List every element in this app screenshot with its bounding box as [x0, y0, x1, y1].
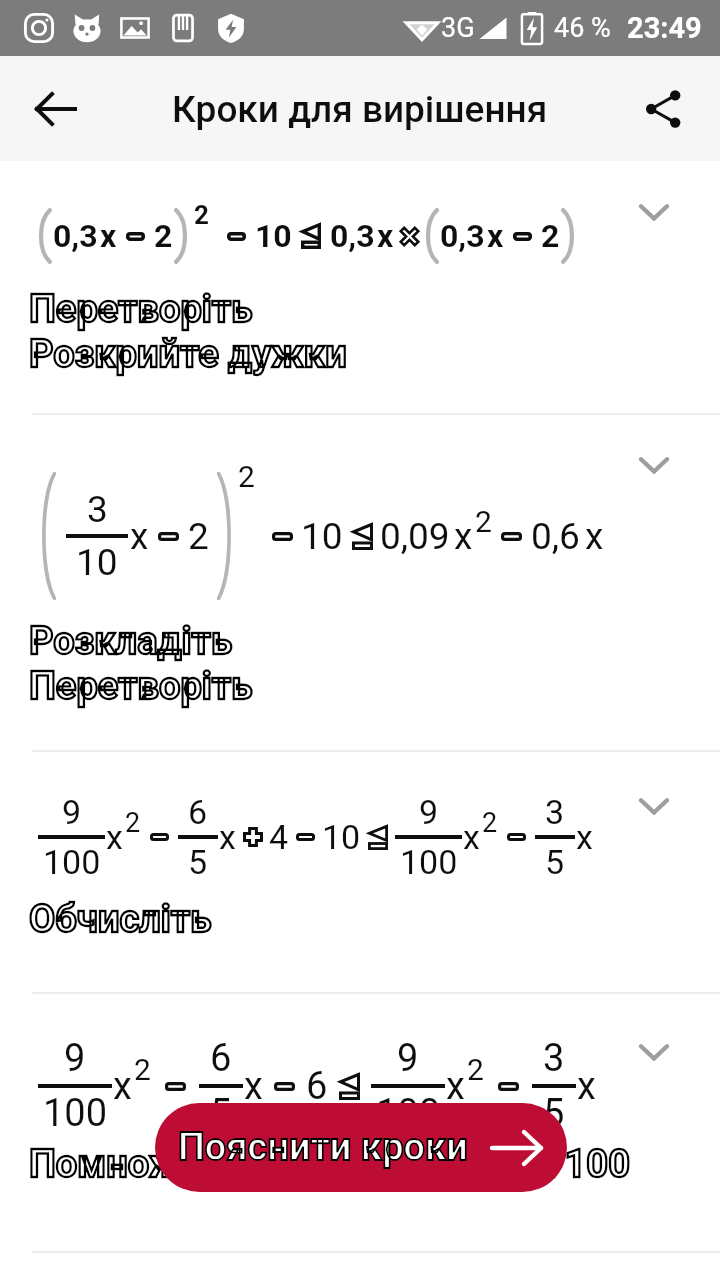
staticText: 2 — [482, 807, 498, 839]
staticText: Перетворіть — [29, 287, 253, 332]
staticText: 9 — [397, 1036, 419, 1081]
staticText: Розкладіть — [29, 619, 233, 664]
staticText: 100 — [43, 842, 101, 882]
staticText: 100 — [43, 1091, 108, 1136]
staticText: 2 — [134, 1052, 151, 1087]
staticText: x — [377, 217, 394, 255]
staticText: 10 — [301, 515, 343, 558]
staticText: 6 — [210, 1036, 232, 1081]
staticText: 4 — [269, 817, 289, 857]
staticText: 2 — [154, 217, 173, 255]
staticText: x — [576, 817, 593, 857]
staticText: Перетворіть — [29, 287, 253, 332]
button[interactable]: Back — [20, 73, 92, 145]
staticText: x — [106, 817, 123, 857]
staticText: 100 — [400, 842, 458, 882]
staticText: Перетворіть — [29, 664, 253, 709]
staticText: Розкрийте дужки — [29, 332, 347, 377]
button[interactable]: Expand step — [636, 447, 672, 483]
staticText: 3 — [87, 488, 108, 531]
button[interactable]: Пояснити кроки — [155, 1103, 567, 1192]
staticText: 2 — [188, 515, 209, 558]
staticText: x — [487, 217, 504, 255]
staticText: 0,3 — [440, 217, 485, 255]
staticText: Розкладіть — [29, 619, 233, 664]
staticText: 3G — [441, 12, 475, 44]
staticText: x — [219, 817, 236, 857]
staticText: 3 — [543, 1036, 565, 1081]
staticText: 6 — [306, 1064, 328, 1109]
button[interactable]: Expand step — [636, 194, 672, 230]
staticText: 5 — [188, 842, 208, 882]
staticText: 0,3 — [330, 217, 375, 255]
staticText: Помножте обидві частини на 100 — [29, 1142, 630, 1187]
button[interactable]: Expand step — [636, 788, 672, 824]
staticText: 5 — [210, 1091, 232, 1136]
staticText: Пояснити кроки — [178, 1125, 468, 1170]
staticText: Розкрийте дужки — [29, 332, 347, 377]
staticText: x — [577, 1064, 596, 1109]
staticText: x — [244, 1064, 263, 1109]
staticText: x — [585, 515, 604, 558]
staticText: 3 — [545, 792, 565, 832]
staticText: 2 — [238, 459, 255, 494]
staticText: 0,09 — [380, 515, 450, 558]
staticText: 2 — [475, 504, 492, 539]
button[interactable]: Expand step — [636, 1034, 672, 1070]
staticText: 23:49 — [627, 11, 702, 45]
staticText: Пояснити кроки — [178, 1125, 468, 1170]
staticText: 2 — [467, 1052, 484, 1087]
staticText: x — [463, 817, 480, 857]
staticText: 2 — [125, 807, 141, 839]
staticText: 9 — [64, 1036, 86, 1081]
staticText: 5 — [543, 1091, 565, 1136]
staticText: 100 — [376, 1091, 441, 1136]
staticText: x — [454, 515, 473, 558]
staticText: 46 % — [554, 12, 611, 44]
staticText: Кроки для вирішення — [172, 88, 548, 131]
staticText: x — [113, 1064, 132, 1109]
staticText: 10 — [322, 817, 361, 857]
staticText: Обчисліть — [29, 897, 212, 942]
staticText: 5 — [545, 842, 565, 882]
staticText: 0,6 — [531, 515, 580, 558]
staticText: 2 — [194, 200, 209, 230]
staticText: 6 — [188, 792, 208, 832]
staticText: 10 — [255, 217, 292, 255]
staticText: 10 — [76, 541, 118, 584]
staticText: x — [446, 1064, 465, 1109]
staticText: 9 — [419, 792, 439, 832]
staticText: x — [100, 217, 117, 255]
staticText: 2 — [541, 217, 560, 255]
staticText: 0,3 — [53, 217, 98, 255]
staticText: Перетворіть — [29, 664, 253, 709]
staticText: Обчисліть — [29, 897, 212, 942]
staticText: 9 — [62, 792, 82, 832]
staticText: Помножте обидві частини на 100 — [29, 1142, 630, 1187]
staticText: x — [130, 515, 149, 558]
button[interactable]: Share — [628, 73, 700, 145]
